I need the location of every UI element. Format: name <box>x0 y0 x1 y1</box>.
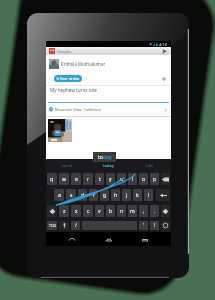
button[interactable]: Add people <box>160 75 168 83</box>
staticText: My nephew turns one <box>50 87 97 93</box>
staticText: b <box>109 208 113 215</box>
staticText: i <box>132 176 134 183</box>
button[interactable]: Send post <box>158 47 171 55</box>
staticText: kids <box>146 163 154 168</box>
staticText: z <box>63 208 66 215</box>
button[interactable]: / <box>71 221 80 230</box>
staticText: 4:16 <box>159 42 167 47</box>
staticText: ' <box>143 222 145 229</box>
button[interactable]: m <box>128 205 137 217</box>
other: enter <box>160 192 167 199</box>
staticText: Krithika Muthukumar <box>61 61 106 67</box>
button[interactable]: o <box>139 173 148 185</box>
staticText: to <box>98 154 103 161</box>
staticText: j <box>126 192 128 199</box>
button[interactable]: g <box>100 189 109 201</box>
button[interactable]: Recent apps <box>135 233 155 246</box>
staticText: w <box>62 176 66 183</box>
staticText: h <box>114 192 118 199</box>
staticText: v <box>98 208 101 215</box>
button[interactable]: t <box>95 173 104 185</box>
button[interactable]: ' <box>139 221 148 230</box>
staticText: d <box>81 192 85 199</box>
button[interactable]: k <box>133 189 142 201</box>
staticText: t <box>99 176 101 183</box>
button[interactable]: mic <box>59 221 69 230</box>
other: emoji <box>162 222 169 229</box>
staticText: r <box>87 176 90 183</box>
other: shift <box>162 208 169 215</box>
button[interactable]: f <box>89 189 98 201</box>
staticText: g <box>103 192 107 199</box>
button[interactable]: shift <box>161 205 170 217</box>
staticText: day <box>103 154 112 161</box>
staticText: k <box>136 192 139 199</box>
button[interactable]: emoji <box>161 221 170 230</box>
button[interactable]: b <box>106 205 115 217</box>
button[interactable]: Your circles <box>54 75 82 82</box>
other: back <box>162 176 169 183</box>
staticText: , <box>143 208 145 215</box>
button[interactable]: r <box>83 173 93 185</box>
staticText: s <box>70 192 73 199</box>
staticText: l <box>148 192 150 199</box>
staticText: n <box>120 208 124 215</box>
button[interactable]: Mountain View, California <box>46 104 171 115</box>
button[interactable]: z <box>59 205 69 217</box>
staticText: o <box>142 176 146 183</box>
button[interactable]: i <box>128 173 137 185</box>
button[interactable]: Attached photo <box>48 119 72 142</box>
staticText: a <box>58 192 61 199</box>
button[interactable]: . <box>150 205 159 217</box>
button[interactable]: Back <box>62 233 82 246</box>
button[interactable]: v <box>95 205 104 217</box>
staticText: ! <box>154 222 156 229</box>
button[interactable]: kids <box>129 159 171 171</box>
other: shift <box>49 208 56 215</box>
staticText: q <box>50 176 54 183</box>
button[interactable]: s <box>66 189 76 201</box>
button[interactable]: l <box>144 189 153 201</box>
staticText: Google+ <box>57 49 72 54</box>
button[interactable]: enter <box>156 189 170 201</box>
button[interactable]: a <box>54 189 64 201</box>
button[interactable]: ! <box>150 221 159 230</box>
staticText: y <box>109 176 112 183</box>
button[interactable]: e <box>71 173 81 185</box>
button[interactable]: back <box>161 173 170 185</box>
staticText: e <box>75 176 78 183</box>
button[interactable]: d <box>78 189 87 201</box>
staticText: kandi <box>62 163 72 168</box>
button[interactable]: shift <box>47 205 57 217</box>
staticText: today <box>103 163 114 168</box>
button[interactable]: x <box>71 205 81 217</box>
button[interactable]: today <box>87 159 129 171</box>
staticText: Your circles <box>60 76 80 81</box>
button[interactable]: p <box>150 173 159 185</box>
staticText: ?123 <box>49 224 56 228</box>
button[interactable]: h <box>111 189 120 201</box>
button[interactable]: c <box>83 205 93 217</box>
button[interactable]: u <box>117 173 126 185</box>
other: mic <box>61 222 68 229</box>
button[interactable]: y <box>106 173 115 185</box>
staticText: c <box>87 208 90 215</box>
button[interactable]: Home <box>99 233 119 246</box>
staticText: Mountain View, California <box>55 107 101 112</box>
staticText: f <box>93 192 95 199</box>
button[interactable]: j <box>122 189 131 201</box>
staticText: p <box>153 176 157 183</box>
staticText: . <box>154 208 156 215</box>
button[interactable]: q <box>47 173 57 185</box>
button[interactable]: kandi <box>46 159 87 171</box>
staticText: / <box>75 222 77 229</box>
button[interactable]: n <box>117 205 126 217</box>
button[interactable]: w <box>59 173 69 185</box>
staticText: m <box>130 208 135 215</box>
button[interactable]: ?123 <box>47 221 57 230</box>
button[interactable]: , <box>139 205 148 217</box>
staticText: x <box>75 208 78 215</box>
staticText: u <box>120 176 124 183</box>
